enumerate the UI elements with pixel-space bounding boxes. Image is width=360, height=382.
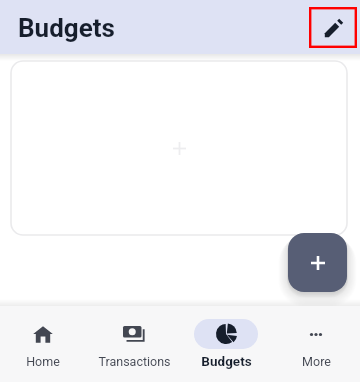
staticText: More xyxy=(302,354,331,369)
button[interactable]: More xyxy=(272,319,360,364)
button[interactable]: Edit budgets xyxy=(309,7,357,48)
button[interactable]: Add a budget xyxy=(11,61,347,235)
staticText: Budgets xyxy=(18,13,115,43)
button[interactable]: Add budget xyxy=(288,233,347,292)
staticText: Budgets xyxy=(201,353,252,369)
button[interactable]: Transactions xyxy=(90,319,178,364)
staticText: Home xyxy=(26,354,60,369)
button[interactable]: Home xyxy=(0,319,87,364)
button[interactable]: Budgets xyxy=(182,319,270,365)
staticText: Transactions xyxy=(98,354,171,369)
